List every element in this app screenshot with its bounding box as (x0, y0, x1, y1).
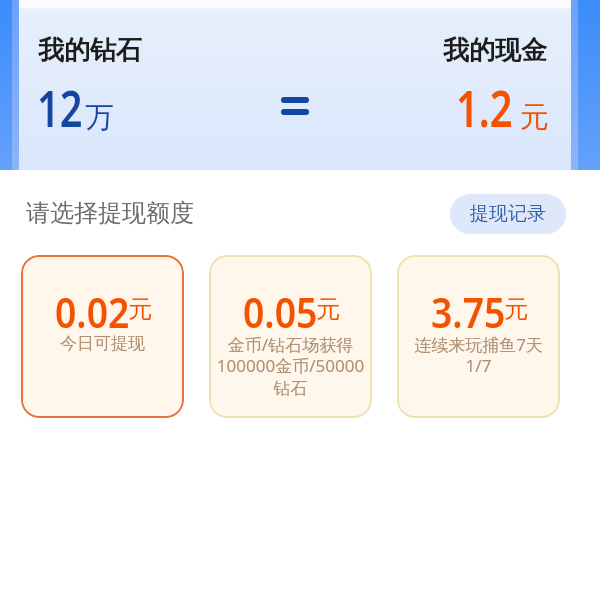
staticText: 提现记录 (470, 202, 546, 226)
staticText: 连续来玩捕鱼7天 1/7 (397, 333, 560, 377)
staticText: 12 (37, 72, 83, 141)
staticText: 元 (504, 294, 528, 324)
staticText: 我的现金 (443, 34, 547, 67)
staticText: 金币/钻石场获得 100000金币/50000 钻石 (209, 333, 372, 399)
staticText: 元 (316, 294, 340, 324)
staticText: 3.75 (431, 284, 506, 340)
staticText: 元 (520, 99, 549, 136)
button[interactable]: 0.05 (209, 255, 372, 418)
button[interactable]: 0.02 (21, 255, 184, 418)
button[interactable]: 提现记录 (450, 194, 566, 234)
staticText: 万 (85, 99, 114, 136)
staticText: 今日可提现 (21, 333, 184, 354)
staticText: 请选择提现额度 (26, 198, 194, 228)
staticText: 元 (128, 294, 152, 324)
staticText: 0.02 (55, 284, 130, 340)
staticText: 1.2 (456, 72, 513, 141)
button[interactable]: 3.75 (397, 255, 560, 418)
staticText: 我的钻石 (38, 34, 142, 67)
staticText: 0.05 (243, 284, 318, 340)
